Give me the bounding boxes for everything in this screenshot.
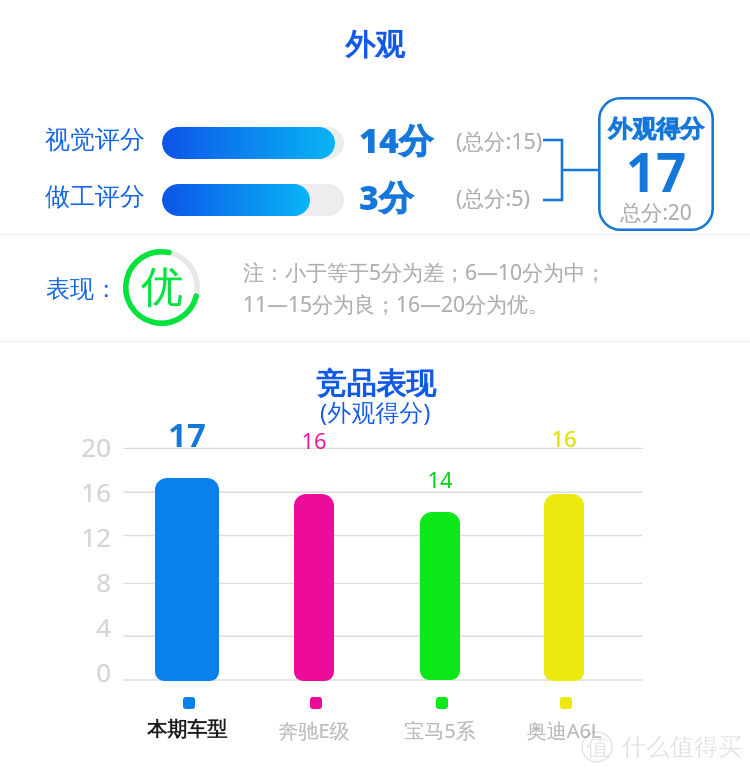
staticText: 17 xyxy=(127,412,247,457)
staticText: 17 xyxy=(598,135,714,207)
button[interactable]: 外观 xyxy=(345,26,405,64)
staticText: 优 xyxy=(141,261,183,314)
staticText: 16 xyxy=(254,425,374,455)
staticText: 值 xyxy=(586,733,609,762)
button[interactable]: 外观得分 xyxy=(598,97,714,231)
staticText: (外观得分) xyxy=(320,395,431,428)
button[interactable]: 宝马5系 xyxy=(420,512,460,680)
staticText: 视觉评分 xyxy=(45,124,145,155)
button[interactable]: 本期车型 xyxy=(155,478,219,681)
staticText: 表现： xyxy=(46,274,118,304)
staticText: 14 xyxy=(380,464,500,494)
staticText: 0 xyxy=(61,654,111,689)
staticText: (总分:15) xyxy=(456,126,543,155)
staticText: 14分 xyxy=(359,117,433,163)
button[interactable]: 奔驰E级 xyxy=(294,494,334,681)
staticText: (总分:5) xyxy=(456,183,530,212)
button[interactable]: 本期车型 xyxy=(112,717,262,742)
button[interactable]: 奥迪A6L xyxy=(544,494,584,681)
staticText: 16 xyxy=(61,474,111,509)
button[interactable]: 表现 优 xyxy=(123,249,200,326)
staticText: 4 xyxy=(61,609,111,644)
staticText: 8 xyxy=(61,564,111,599)
button[interactable]: 奥迪A6L xyxy=(489,717,639,744)
staticText: 12 xyxy=(61,519,111,554)
staticText: 总分:20 xyxy=(598,198,714,227)
staticText: 竞品表现 xyxy=(316,365,436,403)
staticText: 做工评分 xyxy=(45,181,145,212)
staticText: 注：小于等于5分为差；6—10分为中； 11—15分为良；16—20分为优。 xyxy=(243,258,607,319)
staticText: 16 xyxy=(504,423,624,453)
staticText: 20 xyxy=(61,429,111,464)
button[interactable]: 奔驰E级 xyxy=(239,717,389,744)
staticText: 3分 xyxy=(359,174,413,220)
staticText: 外观得分 xyxy=(608,114,704,144)
staticText: 什么值得买 xyxy=(622,732,742,762)
button[interactable]: 宝马5系 xyxy=(365,717,515,744)
